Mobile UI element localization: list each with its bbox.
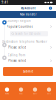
button[interactable]: History (28, 82, 42, 100)
staticText: 9:41 (1, 1, 8, 4)
button[interactable]: Calling From (9, 53, 53, 63)
staticText: Calling From (8, 53, 25, 57)
staticText: Rates (19, 93, 23, 95)
staticText: Search for ISD code (15, 32, 41, 35)
staticText: Please select (8, 59, 26, 62)
staticText: Home (5, 93, 9, 95)
staticText: My Account (20, 6, 35, 10)
button[interactable]: Rates (14, 82, 28, 100)
staticText: More (47, 93, 51, 95)
button[interactable]: More (42, 82, 56, 100)
staticText: Destination Telephone Number (2, 40, 47, 43)
button[interactable]: My Account (20, 6, 35, 10)
staticText: i (50, 6, 51, 10)
staticText: Please select (8, 46, 26, 49)
button[interactable]: Account info (48, 6, 53, 11)
staticText: Country / Region (6, 19, 31, 23)
staticText: New Transfer (19, 13, 36, 16)
button[interactable]: Country / Region (9, 19, 53, 29)
button[interactable]: Submit (3, 67, 53, 76)
staticText: Submit (23, 70, 33, 73)
staticText: History (32, 93, 37, 95)
button[interactable]: Destination Telephone Number (9, 40, 53, 50)
button[interactable]: Home (0, 82, 14, 100)
staticText: Popular Countries (6, 25, 32, 28)
